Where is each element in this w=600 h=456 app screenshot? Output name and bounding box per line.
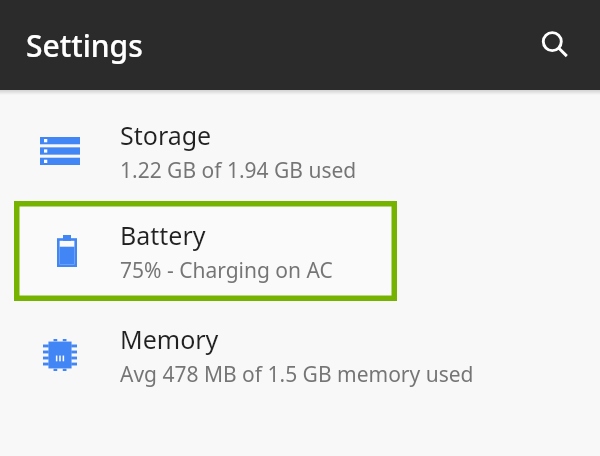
staticText: Storage: [120, 118, 212, 152]
staticText: Settings: [26, 25, 143, 66]
staticText: Battery: [120, 218, 206, 252]
button[interactable]: Search: [528, 18, 582, 72]
staticText: Avg 478 MB of 1.5 GB memory used: [120, 360, 474, 389]
button[interactable]: Storage: [0, 101, 600, 201]
staticText: 75% - Charging on AC: [120, 256, 333, 285]
button[interactable]: Memory: [0, 305, 600, 405]
staticText: Memory: [120, 322, 219, 356]
button[interactable]: Battery: [14, 201, 397, 301]
staticText: 1.22 GB of 1.94 GB used: [120, 156, 357, 185]
